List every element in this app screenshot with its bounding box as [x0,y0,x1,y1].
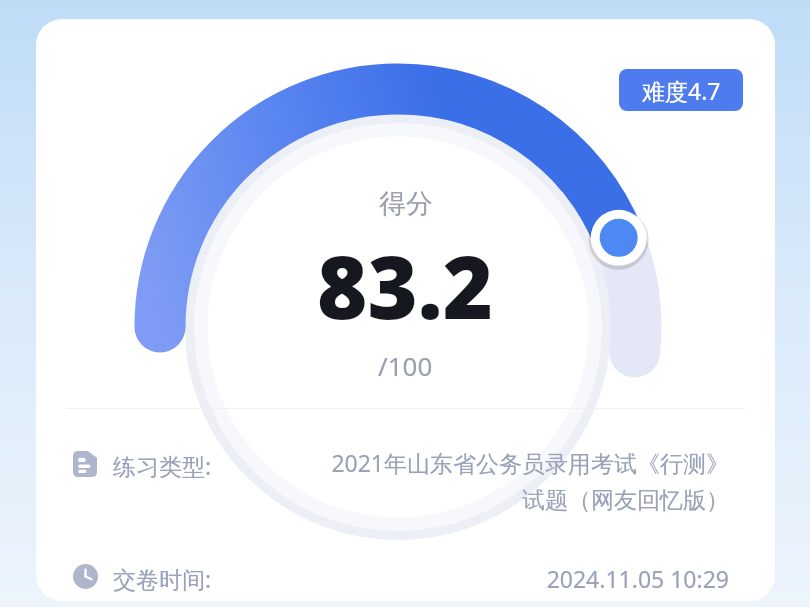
button[interactable]: Submit time [36,543,775,601]
other: Practice type [73,451,97,477]
staticText: 2024.11.05 10:29 [329,563,729,594]
staticText: 练习类型: [113,450,212,481]
button[interactable]: 难度4.7 [619,69,743,111]
staticText: 难度4.7 [642,75,721,106]
staticText: 交卷时间: [113,563,212,594]
staticText: /100 [378,348,433,383]
staticText: 2021年山东省公务员录用考试《行测》试题（网友回忆版） [321,447,729,515]
button[interactable]: Practice type [36,439,775,534]
staticText: 83.2 [317,227,494,344]
other: Submit time [73,564,98,589]
staticText: 得分 [379,187,433,221]
